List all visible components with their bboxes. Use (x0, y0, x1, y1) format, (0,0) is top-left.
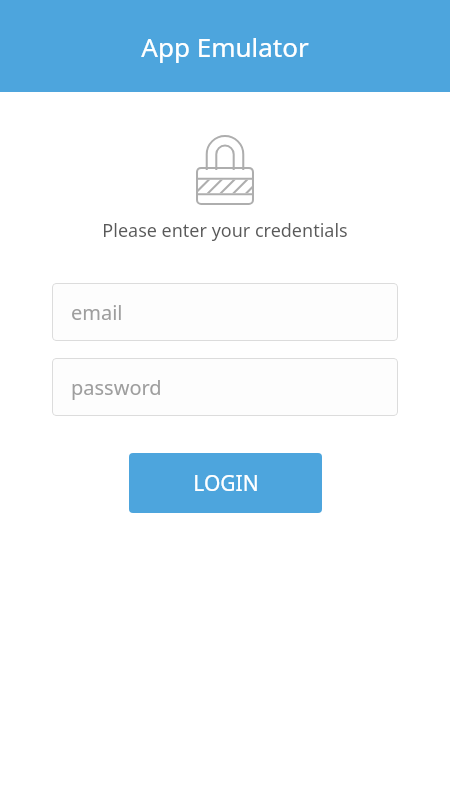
button[interactable]: LOGIN (129, 453, 322, 513)
button[interactable]: password (52, 358, 398, 416)
staticText: email (71, 299, 123, 326)
staticText: LOGIN (193, 469, 259, 498)
other: Lock (196, 135, 254, 205)
staticText: Please enter your credentials (102, 218, 348, 243)
button[interactable]: email (52, 283, 398, 341)
staticText: App Emulator (141, 29, 309, 64)
staticText: password (71, 374, 162, 401)
